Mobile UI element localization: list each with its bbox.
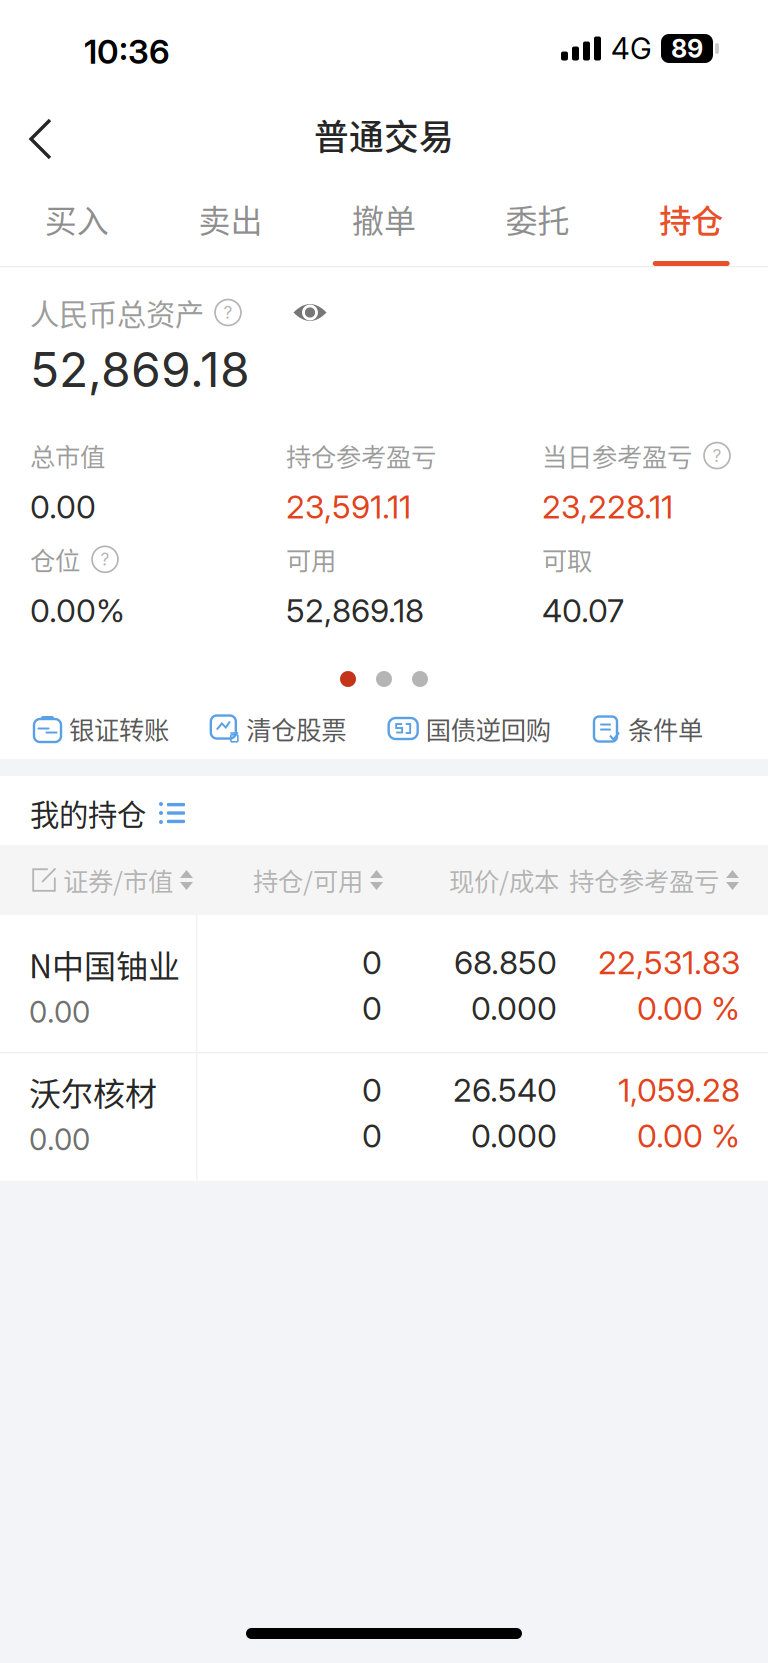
staticText: 清仓股票 xyxy=(246,710,346,747)
staticText: 0 xyxy=(362,1116,382,1155)
button[interactable]: 持仓 xyxy=(614,181,768,266)
staticText: 0.00 % xyxy=(637,989,740,1028)
button[interactable]: 沃尔核材 xyxy=(0,1053,768,1180)
staticText: 沃尔核材 xyxy=(29,1068,157,1115)
staticText: 0.000 xyxy=(471,1116,557,1155)
button[interactable]: Sort holdings xyxy=(158,792,186,834)
staticText: 我的持仓 xyxy=(30,792,146,834)
staticText: 撤单 xyxy=(352,196,416,242)
staticText: 0.00 xyxy=(30,488,96,526)
button[interactable]: 国债逆回购 xyxy=(388,698,551,759)
button[interactable]: 银证转账 xyxy=(33,698,169,759)
staticText: 条件单 xyxy=(628,710,703,747)
button[interactable]: 撤单 xyxy=(307,181,461,266)
staticText: 总市值 xyxy=(30,437,105,474)
staticText: 0.00% xyxy=(30,591,125,630)
button[interactable]: 卖出 xyxy=(154,181,307,266)
staticText: 68.850 xyxy=(454,943,557,982)
staticText: ? xyxy=(712,445,721,466)
staticText: 4G xyxy=(611,31,652,66)
staticText: 10:36 xyxy=(84,31,170,72)
staticText: 仓位 xyxy=(30,541,80,578)
staticText: 52,869.18 xyxy=(286,591,424,630)
staticText: 持仓参考盈亏 xyxy=(569,862,719,898)
staticText: 0 xyxy=(362,1071,382,1109)
staticText: 国债逆回购 xyxy=(426,710,551,747)
staticText: 人民币总资产 xyxy=(30,291,204,334)
staticText: 证券/市值 xyxy=(63,862,173,898)
staticText: 26.540 xyxy=(453,1071,557,1109)
staticText: 0.000 xyxy=(471,989,557,1028)
staticText: 23,228.11 xyxy=(542,488,673,526)
staticText: 0.00 % xyxy=(637,1116,740,1155)
staticText: 买入 xyxy=(45,196,109,242)
button[interactable]: 买入 xyxy=(0,181,154,266)
staticText: 持仓/可用 xyxy=(253,862,363,898)
staticText: 0.00 xyxy=(29,1122,90,1157)
staticText: 委托 xyxy=(506,196,570,242)
staticText: 普通交易 xyxy=(314,110,454,160)
staticText: 现价/成本 xyxy=(449,862,559,898)
staticText: 持仓 xyxy=(659,196,723,242)
staticText: 0.00 xyxy=(29,994,90,1030)
button[interactable]: 清仓股票 xyxy=(210,698,346,759)
staticText: 52,869.18 xyxy=(30,340,250,399)
staticText: 23,591.11 xyxy=(286,488,411,526)
staticText: 当日参考盈亏 xyxy=(542,437,692,474)
staticText: 可取 xyxy=(542,541,592,578)
staticText: ? xyxy=(223,302,232,323)
staticText: 89 xyxy=(671,33,703,64)
staticText: 0 xyxy=(362,989,382,1028)
button[interactable]: Back xyxy=(0,105,77,173)
staticText: 卖出 xyxy=(198,196,262,242)
button[interactable]: 条件单 xyxy=(592,698,703,759)
staticText: 22,531.83 xyxy=(598,943,740,982)
staticText: 40.07 xyxy=(542,591,624,630)
staticText: 1,059.28 xyxy=(618,1071,740,1109)
staticText: ? xyxy=(100,549,109,570)
button[interactable]: 委托 xyxy=(461,181,614,266)
button[interactable]: N中国铀业 xyxy=(0,915,768,1052)
staticText: 0 xyxy=(362,943,382,982)
staticText: 银证转账 xyxy=(69,710,169,747)
staticText: 持仓参考盈亏 xyxy=(286,437,436,474)
staticText: N中国铀业 xyxy=(29,941,180,987)
staticText: 可用 xyxy=(286,541,336,578)
button[interactable]: Toggle balance visibility xyxy=(241,290,341,334)
